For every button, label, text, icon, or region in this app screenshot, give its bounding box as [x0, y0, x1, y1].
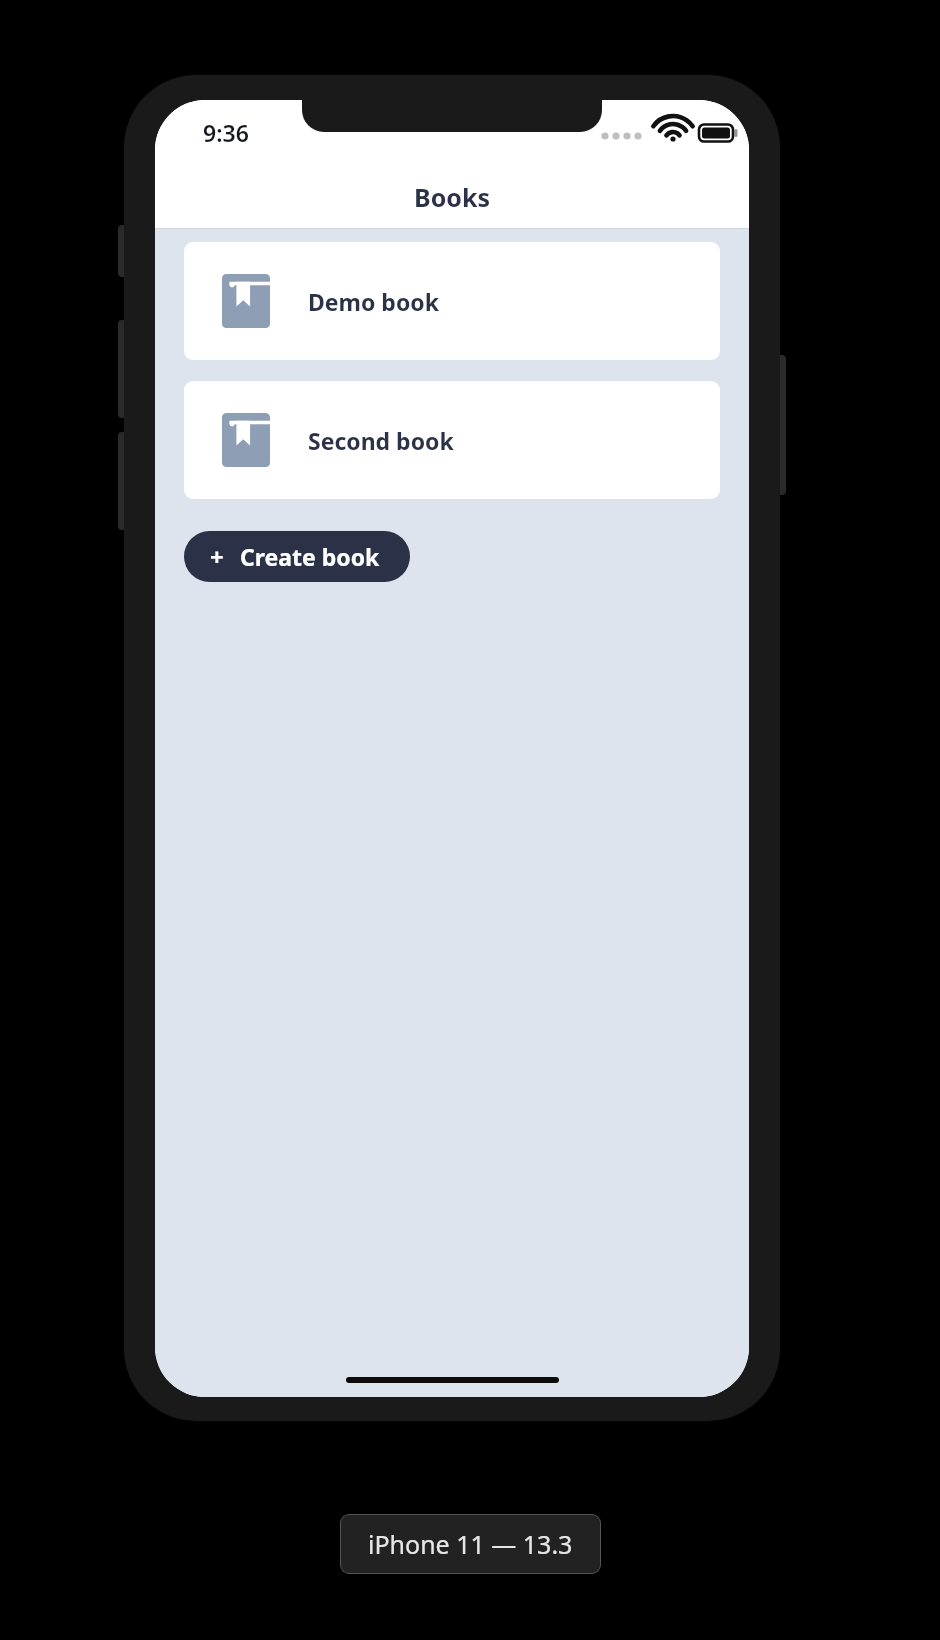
button[interactable]: Book [184, 381, 720, 499]
staticText: Create book [240, 541, 380, 572]
staticText: + [210, 540, 224, 573]
other: Book [222, 274, 270, 328]
staticText: Books [414, 180, 490, 214]
staticText: iPhone 11 — 13.3 [368, 1527, 573, 1561]
staticText: Demo book [308, 286, 439, 317]
staticText: 9:36 [203, 117, 249, 148]
button[interactable]: + [184, 531, 410, 582]
staticText: Second book [308, 425, 454, 456]
other: Book [222, 413, 270, 467]
button[interactable]: Book [184, 242, 720, 360]
